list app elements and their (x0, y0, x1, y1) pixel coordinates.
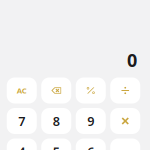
button[interactable]: 5 (41, 138, 71, 150)
staticText: 5 (53, 143, 60, 150)
button[interactable]: 6 (76, 138, 106, 150)
staticText: 8 (53, 112, 60, 130)
staticText: 4 (18, 143, 25, 150)
staticText: AC (17, 85, 27, 96)
button[interactable]: 8 (41, 108, 71, 134)
button[interactable]: 7 (7, 108, 37, 134)
button[interactable]: Multiply (110, 108, 140, 134)
button[interactable]: Divide (110, 77, 140, 103)
button[interactable]: Percent (76, 77, 106, 103)
staticText: 6 (87, 143, 94, 150)
staticText: 0 (127, 48, 137, 72)
button[interactable]: Subtract (110, 138, 140, 150)
staticText: 7 (18, 112, 25, 130)
button[interactable]: 4 (7, 138, 37, 150)
staticText: 9 (87, 112, 94, 130)
button[interactable]: Delete (41, 77, 71, 103)
button[interactable]: AC (7, 77, 37, 103)
button[interactable]: 9 (76, 108, 106, 134)
